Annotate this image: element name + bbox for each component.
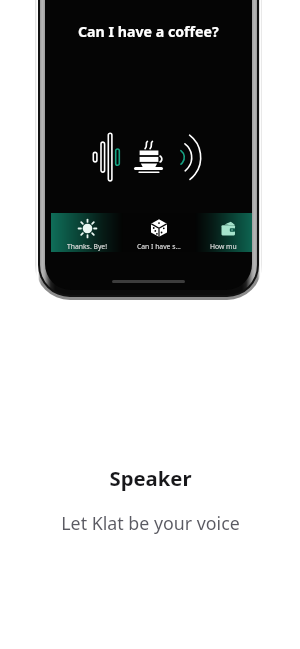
staticText: Speaker [109,464,192,492]
button[interactable]: Can I have s... [123,213,195,252]
button[interactable]: Thanks. Bye! [51,213,123,252]
staticText: Let Klat be your voice [61,511,240,535]
staticText: Thanks. Bye! [67,242,108,251]
staticText: How mu [210,242,237,251]
staticText: Can I have a coffee? [78,22,219,41]
button[interactable]: How mu [195,213,252,252]
staticText: Can I have s... [137,242,181,251]
